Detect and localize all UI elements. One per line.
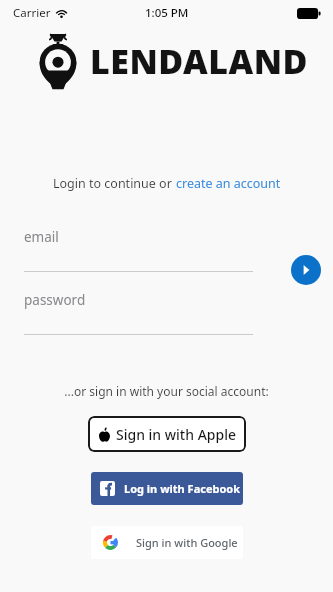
button[interactable]: Submit login [291,255,321,285]
button[interactable]: create an account [176,175,281,192]
button[interactable]: Sign in with Google [91,526,243,559]
staticText: LENDALAND [90,38,309,84]
staticText: Carrier [13,5,51,21]
button[interactable]: email [24,228,253,272]
staticText: create an account [176,175,281,192]
staticText: Login to continue or [53,175,176,192]
staticText: Sign in with Apple [116,425,236,444]
staticText: email [24,228,59,246]
staticText: password [24,291,86,309]
button[interactable]: password [24,291,253,335]
staticText: Sign in with Google [136,535,238,550]
staticText: ...or sign in with your social account: [64,383,269,399]
button[interactable]: Log in with Facebook [91,472,243,505]
staticText: 1:05 PM [145,5,189,21]
staticText: Log in with Facebook [124,481,241,496]
button[interactable]: Sign in with Apple [88,416,246,452]
